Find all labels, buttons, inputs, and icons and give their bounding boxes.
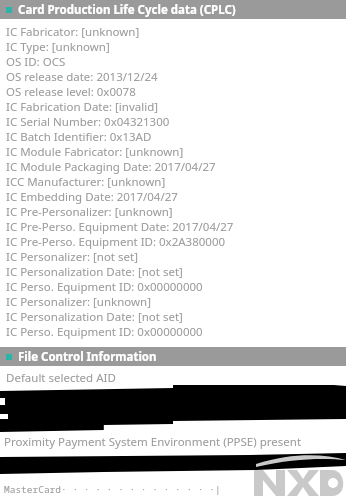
staticText: IC Personalization Date: [not set] <box>6 264 183 279</box>
staticText: Proximity Payment System Environment (PP… <box>4 434 302 450</box>
staticText: OS ID: OCS <box>6 54 66 69</box>
staticText: IC Fabricator: [unknown] <box>6 24 140 39</box>
staticText: ICC Manufacturer: [unknown] <box>6 174 166 189</box>
staticText: IC Personalizer: [unknown] <box>6 294 151 309</box>
staticText: Default selected AID <box>6 370 116 385</box>
staticText: IC Module Packaging Date: 2017/04/27 <box>6 159 216 174</box>
staticText: IC Pre-Personalizer: [unknown] <box>6 204 173 219</box>
staticText: IC Serial Number: 0x04321300 <box>6 114 170 129</box>
staticText: IC Module Fabricator: [unknown] <box>6 144 184 159</box>
staticText: IC Embedding Date: 2017/04/27 <box>6 189 178 204</box>
staticText: IC Type: [unknown] <box>6 39 110 54</box>
staticText: IC Fabrication Date: [invalid] <box>6 99 159 114</box>
staticText: File Control Information <box>18 349 157 365</box>
button[interactable]: Card Production Life Cycle data (CPLC) <box>0 0 346 19</box>
staticText: MasterCard· · · · · · · · · · · · · ·| <box>4 483 221 496</box>
staticText: IC Perso. Equipment ID: 0x00000000 <box>6 324 203 339</box>
staticText: IC Pre-Perso. Equipment Date: 2017/04/27 <box>6 219 234 234</box>
button[interactable]: File Control Information <box>0 347 346 366</box>
staticText: IC Pre-Perso. Equipment ID: 0x2A380000 <box>6 234 226 249</box>
staticText: IC Batch Identifier: 0x13AD <box>6 129 152 144</box>
staticText: OS release date: 2013/12/24 <box>6 69 158 84</box>
staticText: Card Production Life Cycle data (CPLC) <box>18 2 236 18</box>
staticText: IC Personalizer: [not set] <box>6 249 138 264</box>
staticText: OS release level: 0x0078 <box>6 84 136 99</box>
staticText: IC Personalization Date: [not set] <box>6 309 183 324</box>
staticText: IC Perso. Equipment ID: 0x00000000 <box>6 279 203 294</box>
